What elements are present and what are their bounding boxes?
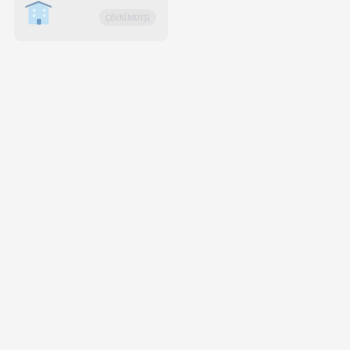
button[interactable]: ÇEVRİMDIŞI <box>99 9 156 26</box>
staticText: ÇEVRİMDIŞI <box>105 12 150 23</box>
button[interactable]: Home <box>25 0 52 25</box>
